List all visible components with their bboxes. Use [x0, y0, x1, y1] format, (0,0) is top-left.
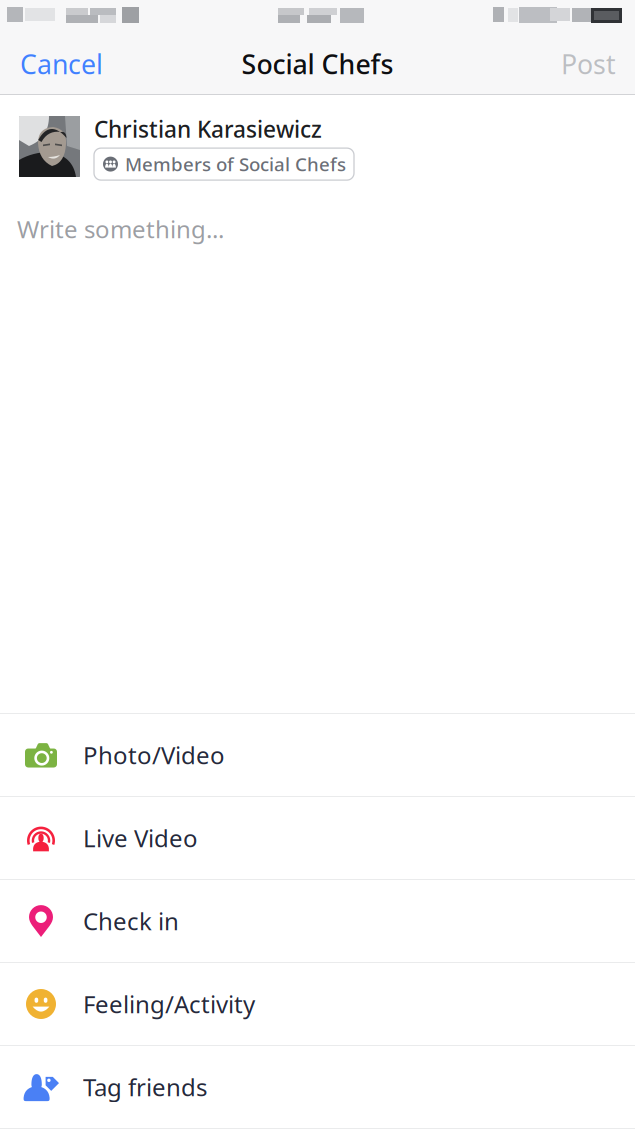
staticText: Post	[561, 46, 616, 82]
button[interactable]: Tag friends	[0, 1046, 635, 1129]
staticText: Cancel	[20, 46, 103, 82]
staticText: Write something...	[17, 213, 224, 245]
staticText: Photo/Video	[83, 739, 225, 771]
button[interactable]: Live Video	[0, 797, 635, 880]
staticText: Tag friends	[83, 1071, 207, 1103]
button[interactable]: Photo/Video	[0, 714, 635, 797]
staticText: Feeling/Activity	[83, 988, 255, 1020]
staticText: Christian Karasiewicz	[94, 114, 322, 144]
button[interactable]: Feeling/Activity	[0, 963, 635, 1046]
staticText: Live Video	[83, 822, 198, 854]
staticText: Check in	[83, 905, 179, 937]
staticText: Social Chefs	[241, 46, 393, 82]
button[interactable]: Members of Social Chefs	[94, 148, 354, 180]
button[interactable]: Cancel	[0, 34, 119, 94]
staticText: Members of Social Chefs	[125, 152, 346, 176]
button[interactable]: Post	[545, 34, 635, 94]
button[interactable]: Check in	[0, 880, 635, 963]
